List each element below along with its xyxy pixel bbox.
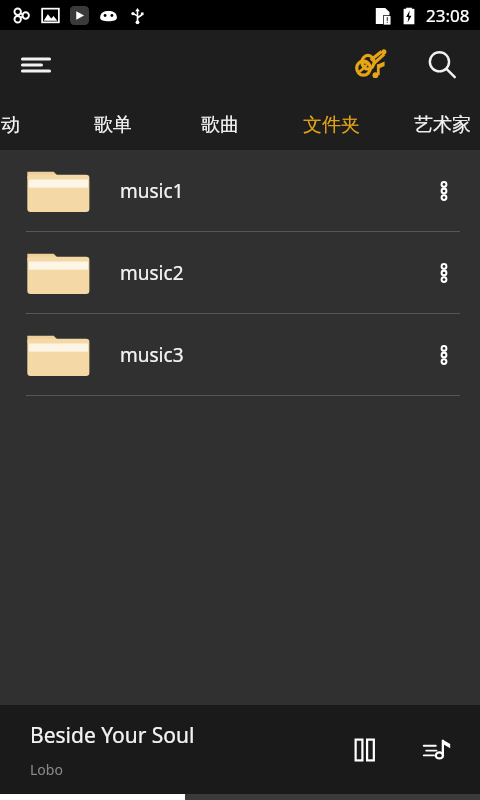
staticText: 文件夹 xyxy=(303,113,360,137)
button[interactable]: Play queue xyxy=(408,721,466,779)
button[interactable]: Search xyxy=(418,41,466,89)
button[interactable]: music2 xyxy=(0,232,480,314)
staticText: 歌曲 xyxy=(201,113,239,137)
staticText: music1 xyxy=(120,178,416,204)
button[interactable]: More options for music3 xyxy=(416,327,472,383)
button[interactable]: music3 xyxy=(0,314,480,396)
button[interactable]: More options for music1 xyxy=(416,163,472,219)
button[interactable]: music1 xyxy=(0,150,480,232)
staticText: 歌单 xyxy=(94,113,132,137)
staticText: music3 xyxy=(120,342,416,368)
button[interactable]: 歌曲 xyxy=(166,100,274,150)
staticText: 艺术家 xyxy=(414,113,471,137)
staticText: 动 xyxy=(1,113,20,137)
button[interactable]: 文件夹 xyxy=(274,100,388,150)
button[interactable]: Beside Your Soul xyxy=(30,721,336,779)
button[interactable]: Menu xyxy=(8,37,64,93)
staticText: 23:08 xyxy=(426,4,470,27)
button[interactable]: 歌单 xyxy=(60,100,166,150)
staticText: music2 xyxy=(120,260,416,286)
button[interactable]: 动 xyxy=(0,100,40,150)
button[interactable]: Pause xyxy=(336,721,394,779)
staticText: Beside Your Soul xyxy=(30,721,195,750)
staticText: Lobo xyxy=(30,760,63,779)
button[interactable]: More options for music2 xyxy=(416,245,472,301)
button[interactable]: Music library xyxy=(348,41,396,89)
button[interactable]: 艺术家 xyxy=(396,100,480,150)
